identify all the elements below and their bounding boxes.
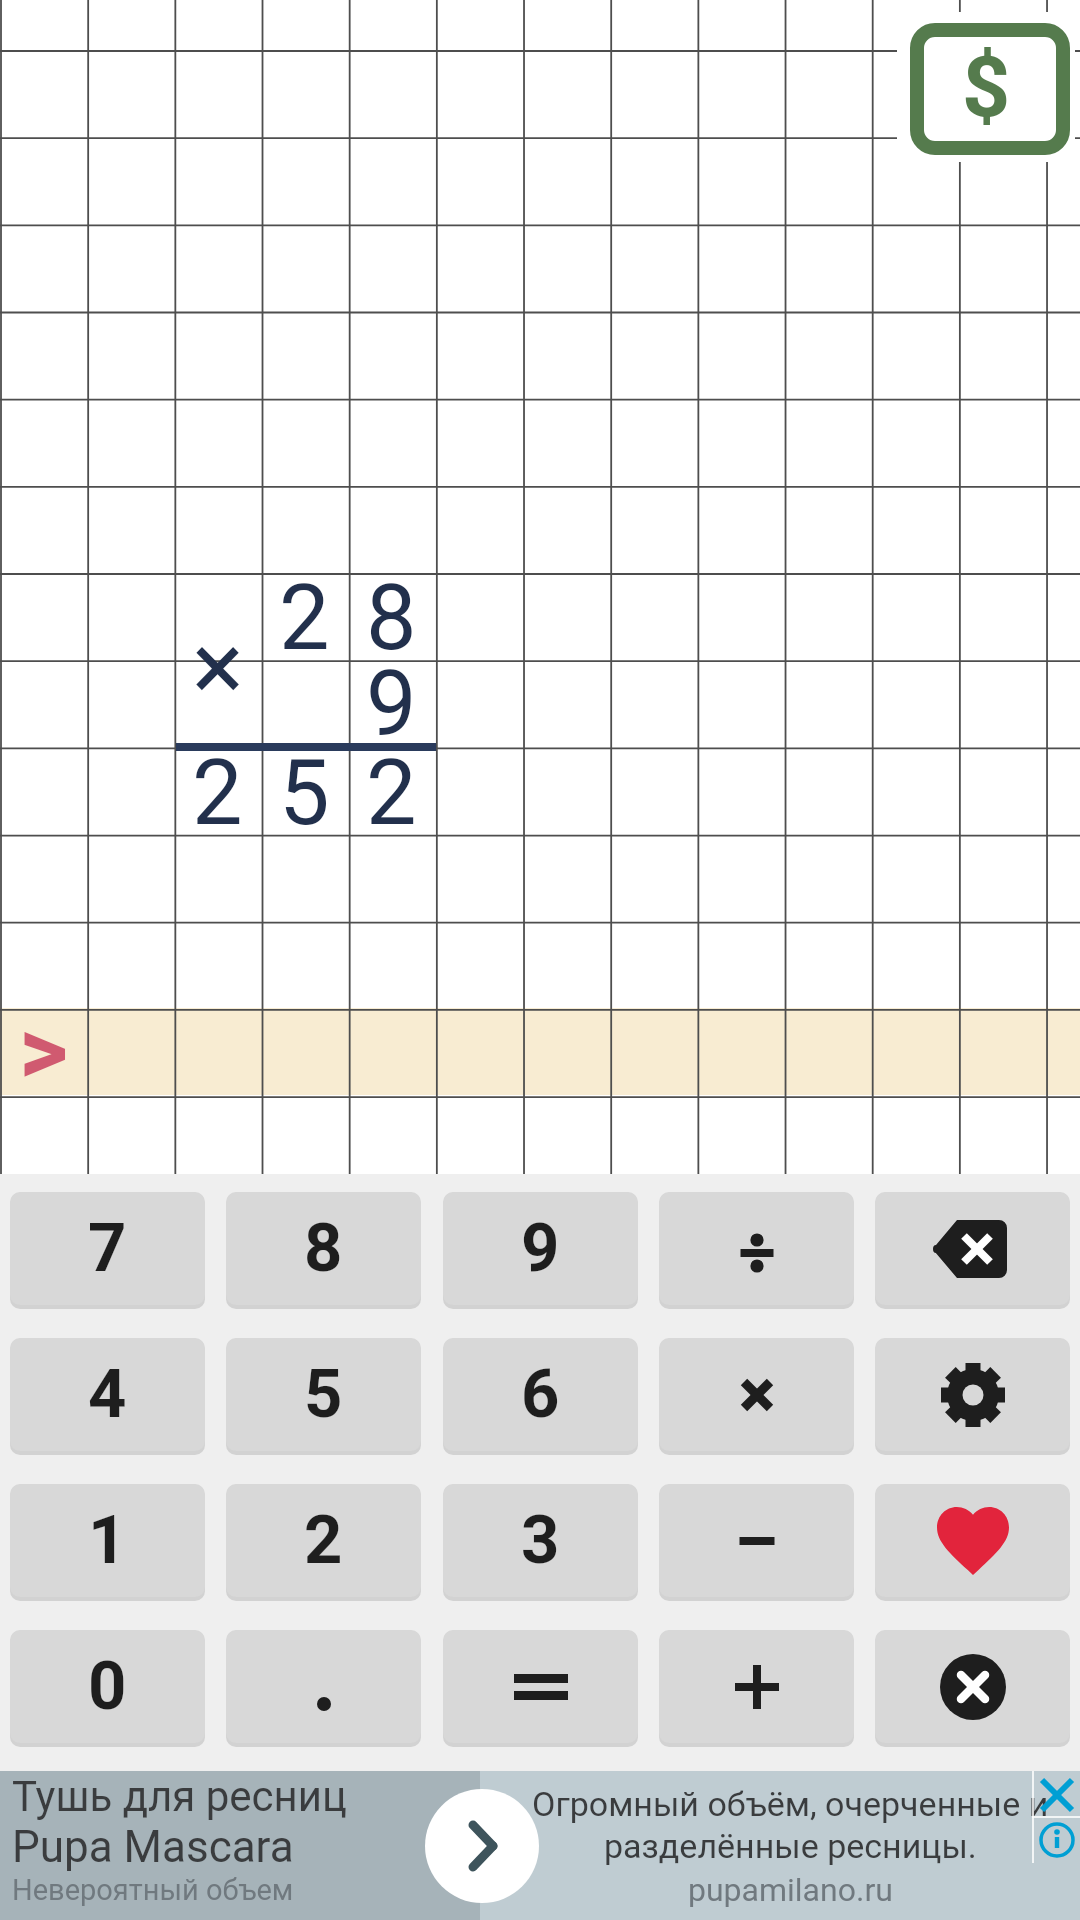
staticText: × <box>192 610 244 697</box>
staticText: 3 <box>521 1501 560 1580</box>
button[interactable] <box>659 1484 854 1597</box>
staticText: > <box>19 995 69 1082</box>
staticText: 8 <box>366 566 417 653</box>
button[interactable]: 1 <box>10 1484 205 1597</box>
button[interactable] <box>659 1630 854 1743</box>
button[interactable] <box>659 1338 854 1451</box>
staticText: 4 <box>88 1355 127 1434</box>
staticText: 2 <box>192 741 243 828</box>
staticText: 6 <box>521 1355 560 1434</box>
button[interactable]: $ <box>897 12 1075 162</box>
button[interactable] <box>443 1630 638 1743</box>
staticText: 2 <box>279 566 330 653</box>
staticText: 2 <box>366 741 417 828</box>
staticText: 9 <box>366 652 417 739</box>
staticText: Pupa Mascara <box>12 1821 294 1873</box>
button[interactable]: 4 <box>10 1338 205 1451</box>
staticText: разделённые ресницы. <box>604 1826 977 1866</box>
button[interactable] <box>875 1192 1070 1305</box>
staticText: 0 <box>88 1647 127 1726</box>
button[interactable]: Тушь для ресниц <box>0 1771 1080 1920</box>
staticText: Огромный объём, очерченные и <box>532 1784 1049 1824</box>
button[interactable]: 3 <box>443 1484 638 1597</box>
button[interactable]: 6 <box>443 1338 638 1451</box>
button[interactable] <box>659 1192 854 1305</box>
button[interactable]: 7 <box>10 1192 205 1305</box>
staticText: Невероятный объем <box>12 1873 294 1907</box>
button[interactable] <box>875 1338 1070 1451</box>
staticText: 2 <box>304 1501 343 1580</box>
button[interactable]: 2 <box>226 1484 421 1597</box>
button[interactable] <box>1034 1773 1080 1816</box>
staticText: $ <box>962 38 1011 136</box>
button[interactable] <box>226 1630 421 1743</box>
staticText: 5 <box>304 1355 343 1434</box>
staticText: 5 <box>279 741 330 828</box>
button[interactable]: 5 <box>226 1338 421 1451</box>
staticText: pupamilano.ru <box>688 1871 893 1909</box>
staticText: 9 <box>521 1209 560 1288</box>
staticText: 8 <box>304 1209 343 1288</box>
button[interactable]: 9 <box>443 1192 638 1305</box>
button[interactable] <box>875 1484 1070 1597</box>
button[interactable] <box>875 1630 1070 1743</box>
staticText: 1 <box>88 1501 127 1580</box>
staticText: 7 <box>88 1209 127 1288</box>
button[interactable] <box>425 1789 539 1903</box>
button[interactable]: 0 <box>10 1630 205 1743</box>
button[interactable]: 8 <box>226 1192 421 1305</box>
staticText: Тушь для ресниц <box>12 1772 347 1821</box>
button[interactable] <box>1034 1818 1080 1861</box>
